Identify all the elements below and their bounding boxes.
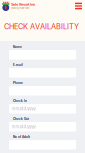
staticText: E-mail — [13, 63, 23, 67]
button[interactable]: Menu — [73, 1, 83, 11]
staticText: No of Adult — [13, 135, 30, 139]
staticText: mm/dd/yyyy — [11, 124, 35, 129]
staticText: Sole Resort Inn — [11, 2, 35, 6]
staticText: Name — [13, 45, 22, 49]
staticText: mm/dd/yyyy — [11, 106, 35, 111]
staticText: booking made easy — [11, 7, 29, 9]
staticText: CHECK AVAILABILITY — [4, 22, 79, 31]
staticText: Check In — [13, 99, 27, 103]
button[interactable]: mm/dd/yyyy — [9, 104, 76, 113]
staticText: Phone — [13, 81, 23, 85]
staticText: Check Out — [13, 117, 29, 121]
button[interactable]: mm/dd/yyyy — [9, 122, 76, 131]
